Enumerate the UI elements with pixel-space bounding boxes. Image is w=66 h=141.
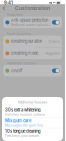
staticText: Additional features	[17, 100, 47, 104]
staticText: Additional features	[7, 61, 37, 65]
button[interactable]: Mix gum care	[2, 117, 63, 128]
button[interactable]: Breathing mode	[3, 47, 62, 59]
button[interactable]: On/Off	[3, 65, 62, 76]
staticText: Reduces water splashing	[11, 23, 51, 27]
staticText: Protection	[7, 13, 23, 17]
staticText: Mix gum care	[5, 118, 31, 123]
button[interactable]: Back	[1, 5, 7, 12]
staticText: Customization	[15, 5, 50, 11]
button[interactable]: 10s tongue cleaning	[2, 128, 63, 139]
staticText: 30s extra whitening	[5, 107, 41, 112]
staticText: Anti-splash protection	[11, 18, 48, 23]
staticText: Freshens your breath	[5, 134, 39, 138]
staticText: Teeth brushing	[7, 32, 31, 36]
staticText: Regular	[45, 51, 57, 55]
staticText: Polishes enamel surface	[5, 113, 45, 116]
button[interactable]: 30s extra whitening	[2, 107, 63, 117]
staticText: 10s tongue cleaning	[5, 129, 41, 134]
staticText: Massages the gum line	[5, 123, 43, 127]
staticText: 2 min	[48, 39, 57, 44]
staticText: On/Off	[11, 68, 22, 73]
button[interactable]: Breathing duration	[3, 36, 62, 47]
button[interactable]: Anti-splash protection	[3, 17, 62, 28]
staticText: Breathing mode	[11, 51, 38, 56]
staticText: Breathing duration	[11, 39, 42, 44]
staticText: 9:41	[4, 0, 13, 5]
